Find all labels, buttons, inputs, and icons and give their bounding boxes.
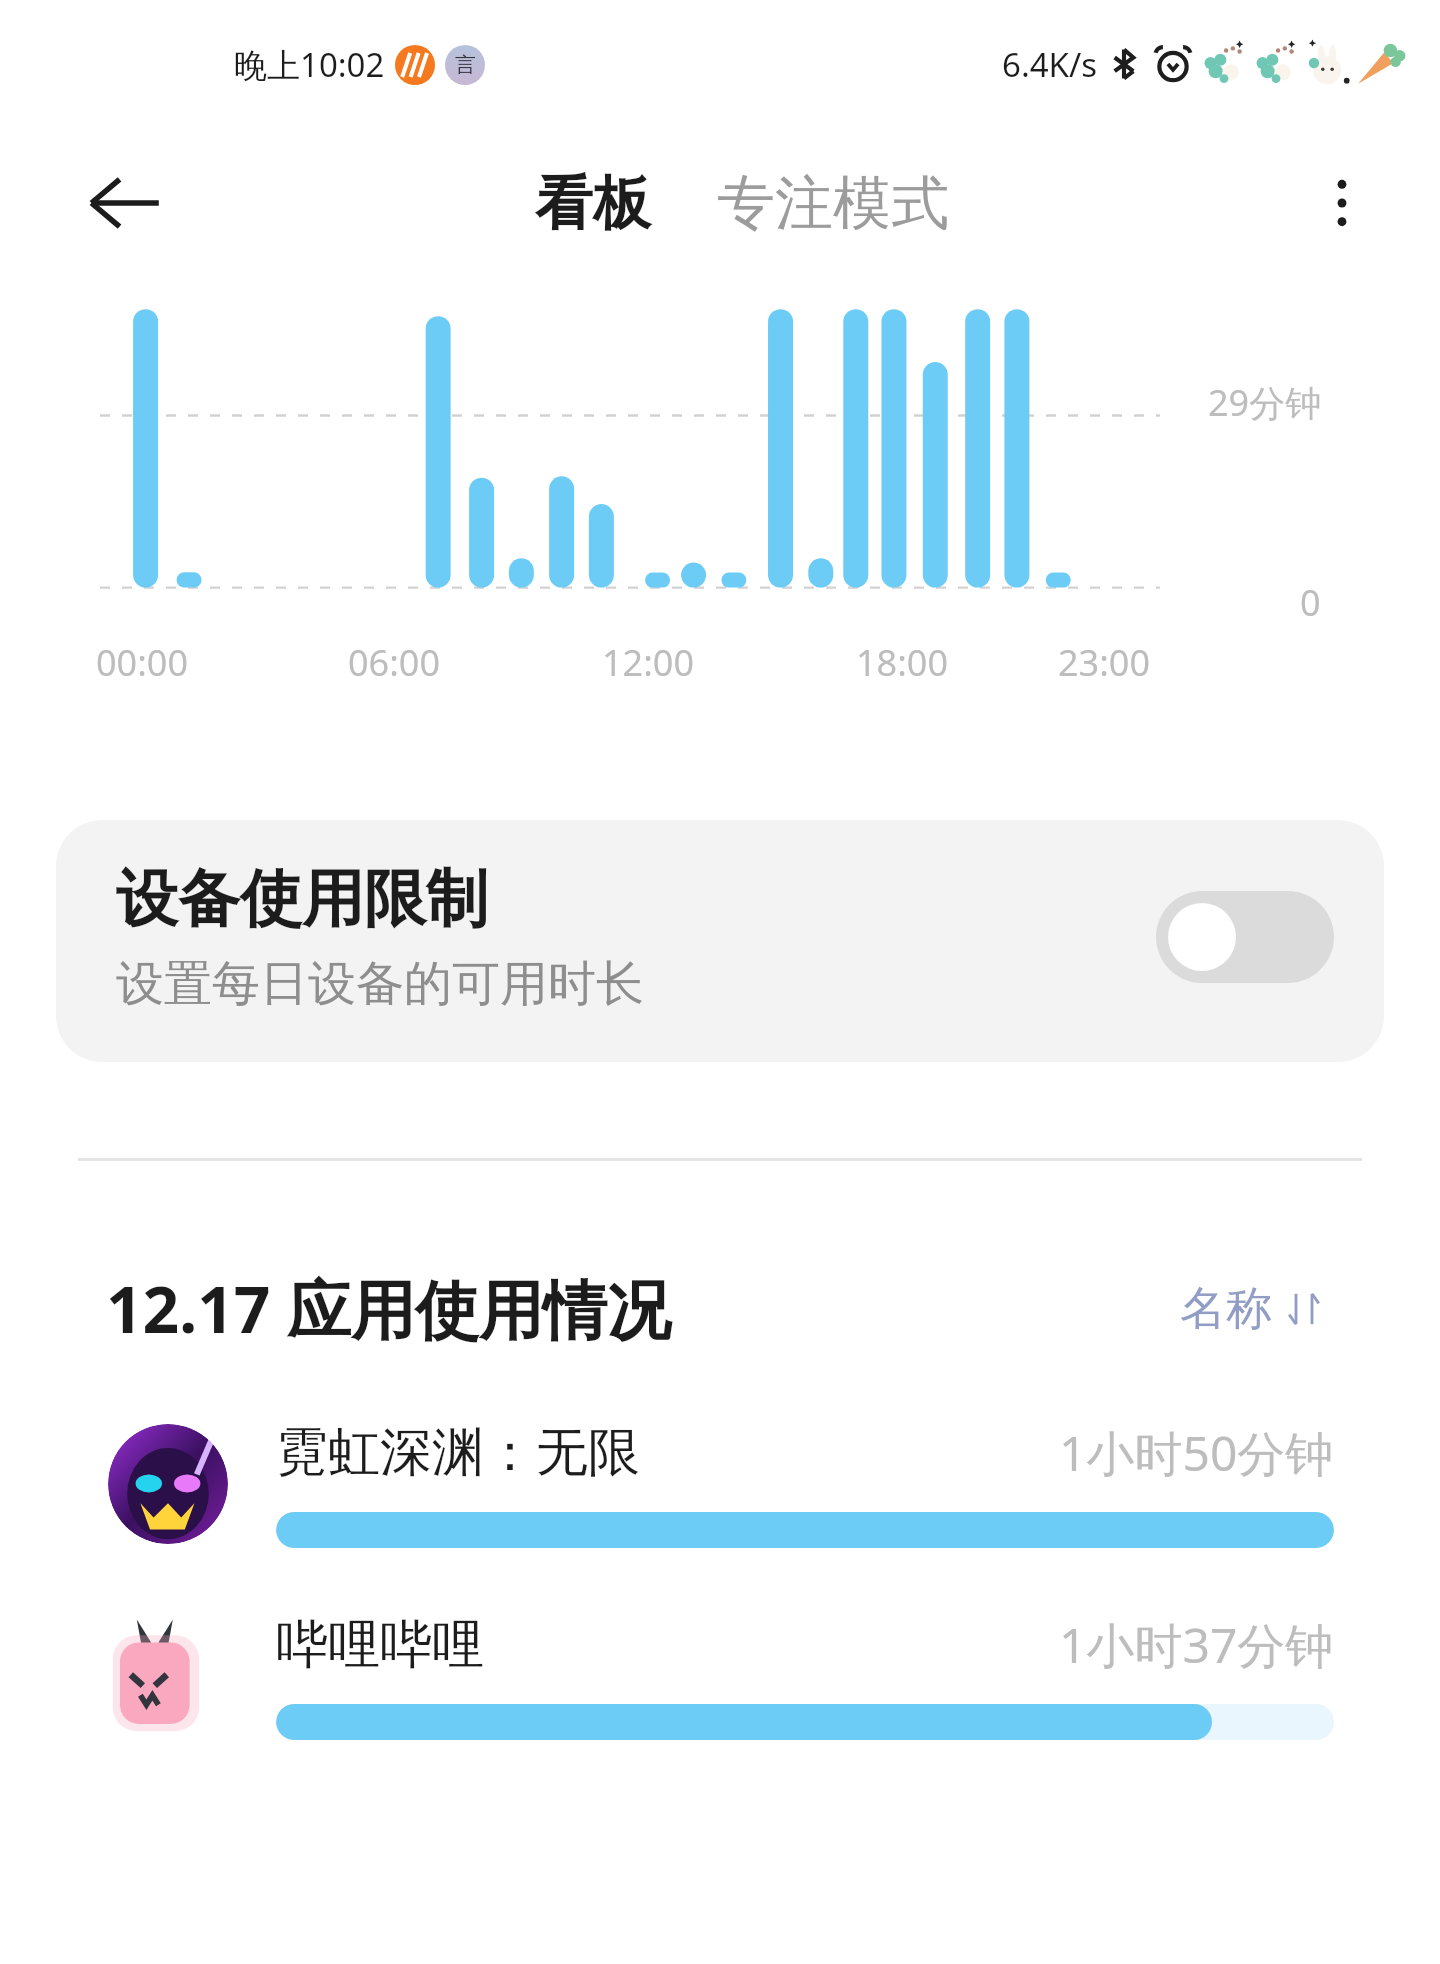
staticText: 看板 [535, 167, 651, 240]
staticText: 1小时37分钟 [1059, 1612, 1334, 1678]
staticText: 晚上10:02 [234, 42, 385, 87]
staticText: 1小时50分钟 [1059, 1420, 1334, 1486]
staticText: 名称 [1180, 1280, 1272, 1338]
staticText: 06:00 [348, 638, 441, 687]
staticText: 设备使用限制 [116, 860, 488, 938]
button[interactable]: 名称 [1170, 1270, 1334, 1348]
button[interactable]: 设备使用限制 [56, 820, 1384, 1062]
staticText: 专注模式 [717, 167, 949, 240]
button[interactable]: 专注模式 [705, 155, 961, 252]
staticText: 12.17 应用使用情况 [106, 1265, 672, 1352]
button[interactable]: 哔哩哔哩 [0, 1600, 1440, 1752]
button[interactable]: 设备使用限制开关，已关闭 [1156, 891, 1334, 983]
staticText: 霓虹深渊：无限 [276, 1420, 640, 1486]
staticText: 29分钟 [1208, 378, 1322, 427]
staticText: 23:00 [1058, 638, 1151, 687]
button[interactable]: 霓虹深渊：无限 [0, 1408, 1440, 1560]
staticText: 0 [1300, 578, 1321, 627]
staticText: 00:00 [96, 638, 189, 687]
staticText: 言 [455, 52, 476, 78]
staticText: 哔哩哔哩 [276, 1612, 484, 1678]
staticText: 设置每日设备的可用时长 [116, 954, 644, 1014]
staticText: 18:00 [856, 638, 949, 687]
staticText: 12:00 [602, 638, 695, 687]
staticText: 6.4K/s [1002, 42, 1098, 87]
button[interactable]: 返回 [74, 153, 174, 253]
button[interactable]: 看板 [523, 155, 663, 252]
button[interactable]: 更多选项 [1296, 157, 1388, 249]
